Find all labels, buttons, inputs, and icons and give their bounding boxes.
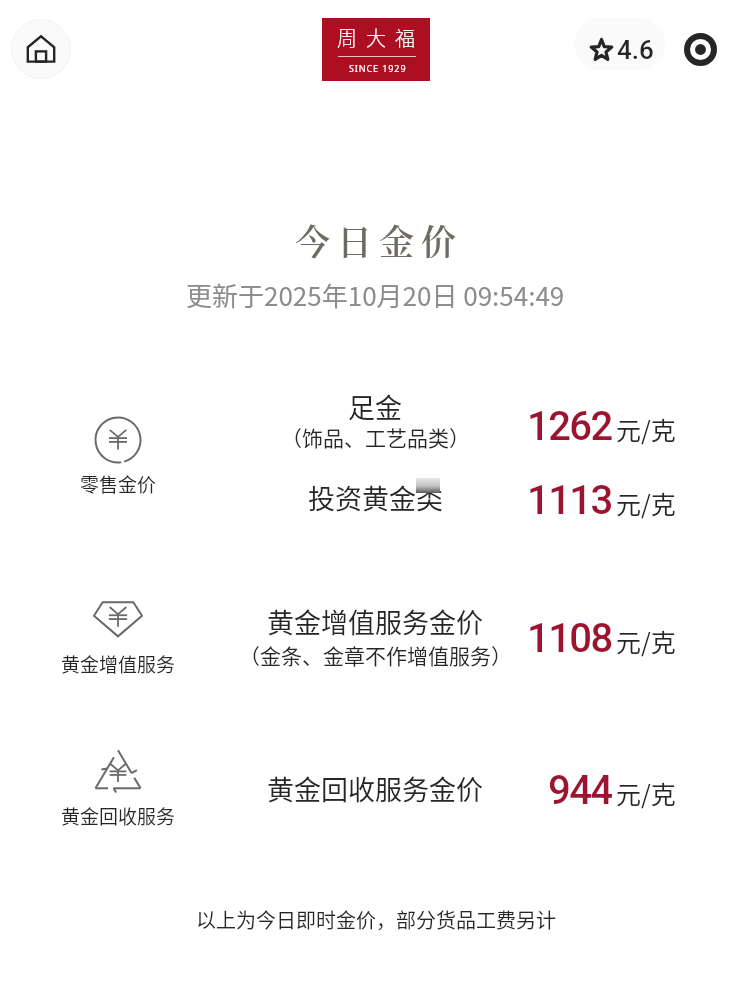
staticText: 元/克	[616, 411, 676, 447]
staticText: 元/克	[616, 775, 676, 811]
staticText: 元/克	[616, 623, 676, 659]
staticText: 周大福	[337, 23, 424, 52]
staticText: （饰品、工艺品类）	[281, 422, 470, 452]
staticText: 1113	[527, 477, 612, 524]
staticText: 944	[548, 767, 612, 814]
staticText: 今日金价	[295, 215, 464, 265]
button[interactable]: Home	[11, 19, 71, 79]
button[interactable]: 周大福	[322, 18, 430, 81]
staticText: 元/克	[616, 485, 676, 521]
staticText: 零售金价	[80, 470, 157, 498]
button[interactable]: 黄金回收服务	[0, 740, 751, 845]
staticText: SINCE 1929	[349, 62, 407, 74]
button[interactable]: Record	[676, 25, 724, 73]
staticText: 更新于2025年10月20日 09:54:49	[186, 276, 565, 314]
staticText: 足金	[348, 387, 402, 426]
button[interactable]: 黄金增值服务	[0, 585, 751, 695]
staticText: 黄金增值服务金价	[267, 602, 483, 641]
staticText: 以上为今日即时金价，部分货品工费另计	[196, 905, 556, 934]
staticText: 黄金回收服务金价	[267, 769, 483, 808]
button[interactable]: 4.6	[574, 18, 665, 70]
staticText: 1108	[527, 615, 612, 662]
staticText: 4.6	[617, 35, 654, 65]
button[interactable]: 零售金价	[0, 370, 751, 530]
staticText: 黄金增值服务	[61, 650, 176, 678]
staticText: 黄金回收服务	[61, 802, 176, 830]
staticText: 1262	[527, 403, 612, 450]
staticText: （金条、金章不作增值服务）	[239, 640, 512, 670]
staticText: 投资黄金类	[308, 478, 443, 517]
